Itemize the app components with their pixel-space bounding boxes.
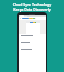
button[interactable]: Phone mockup (17, 12, 47, 72)
button[interactable]: Document preview (26, 21, 40, 34)
staticText: Keeps Data Discoverly (2, 7, 62, 12)
staticText: Cloud Sync Technology (2, 2, 62, 7)
